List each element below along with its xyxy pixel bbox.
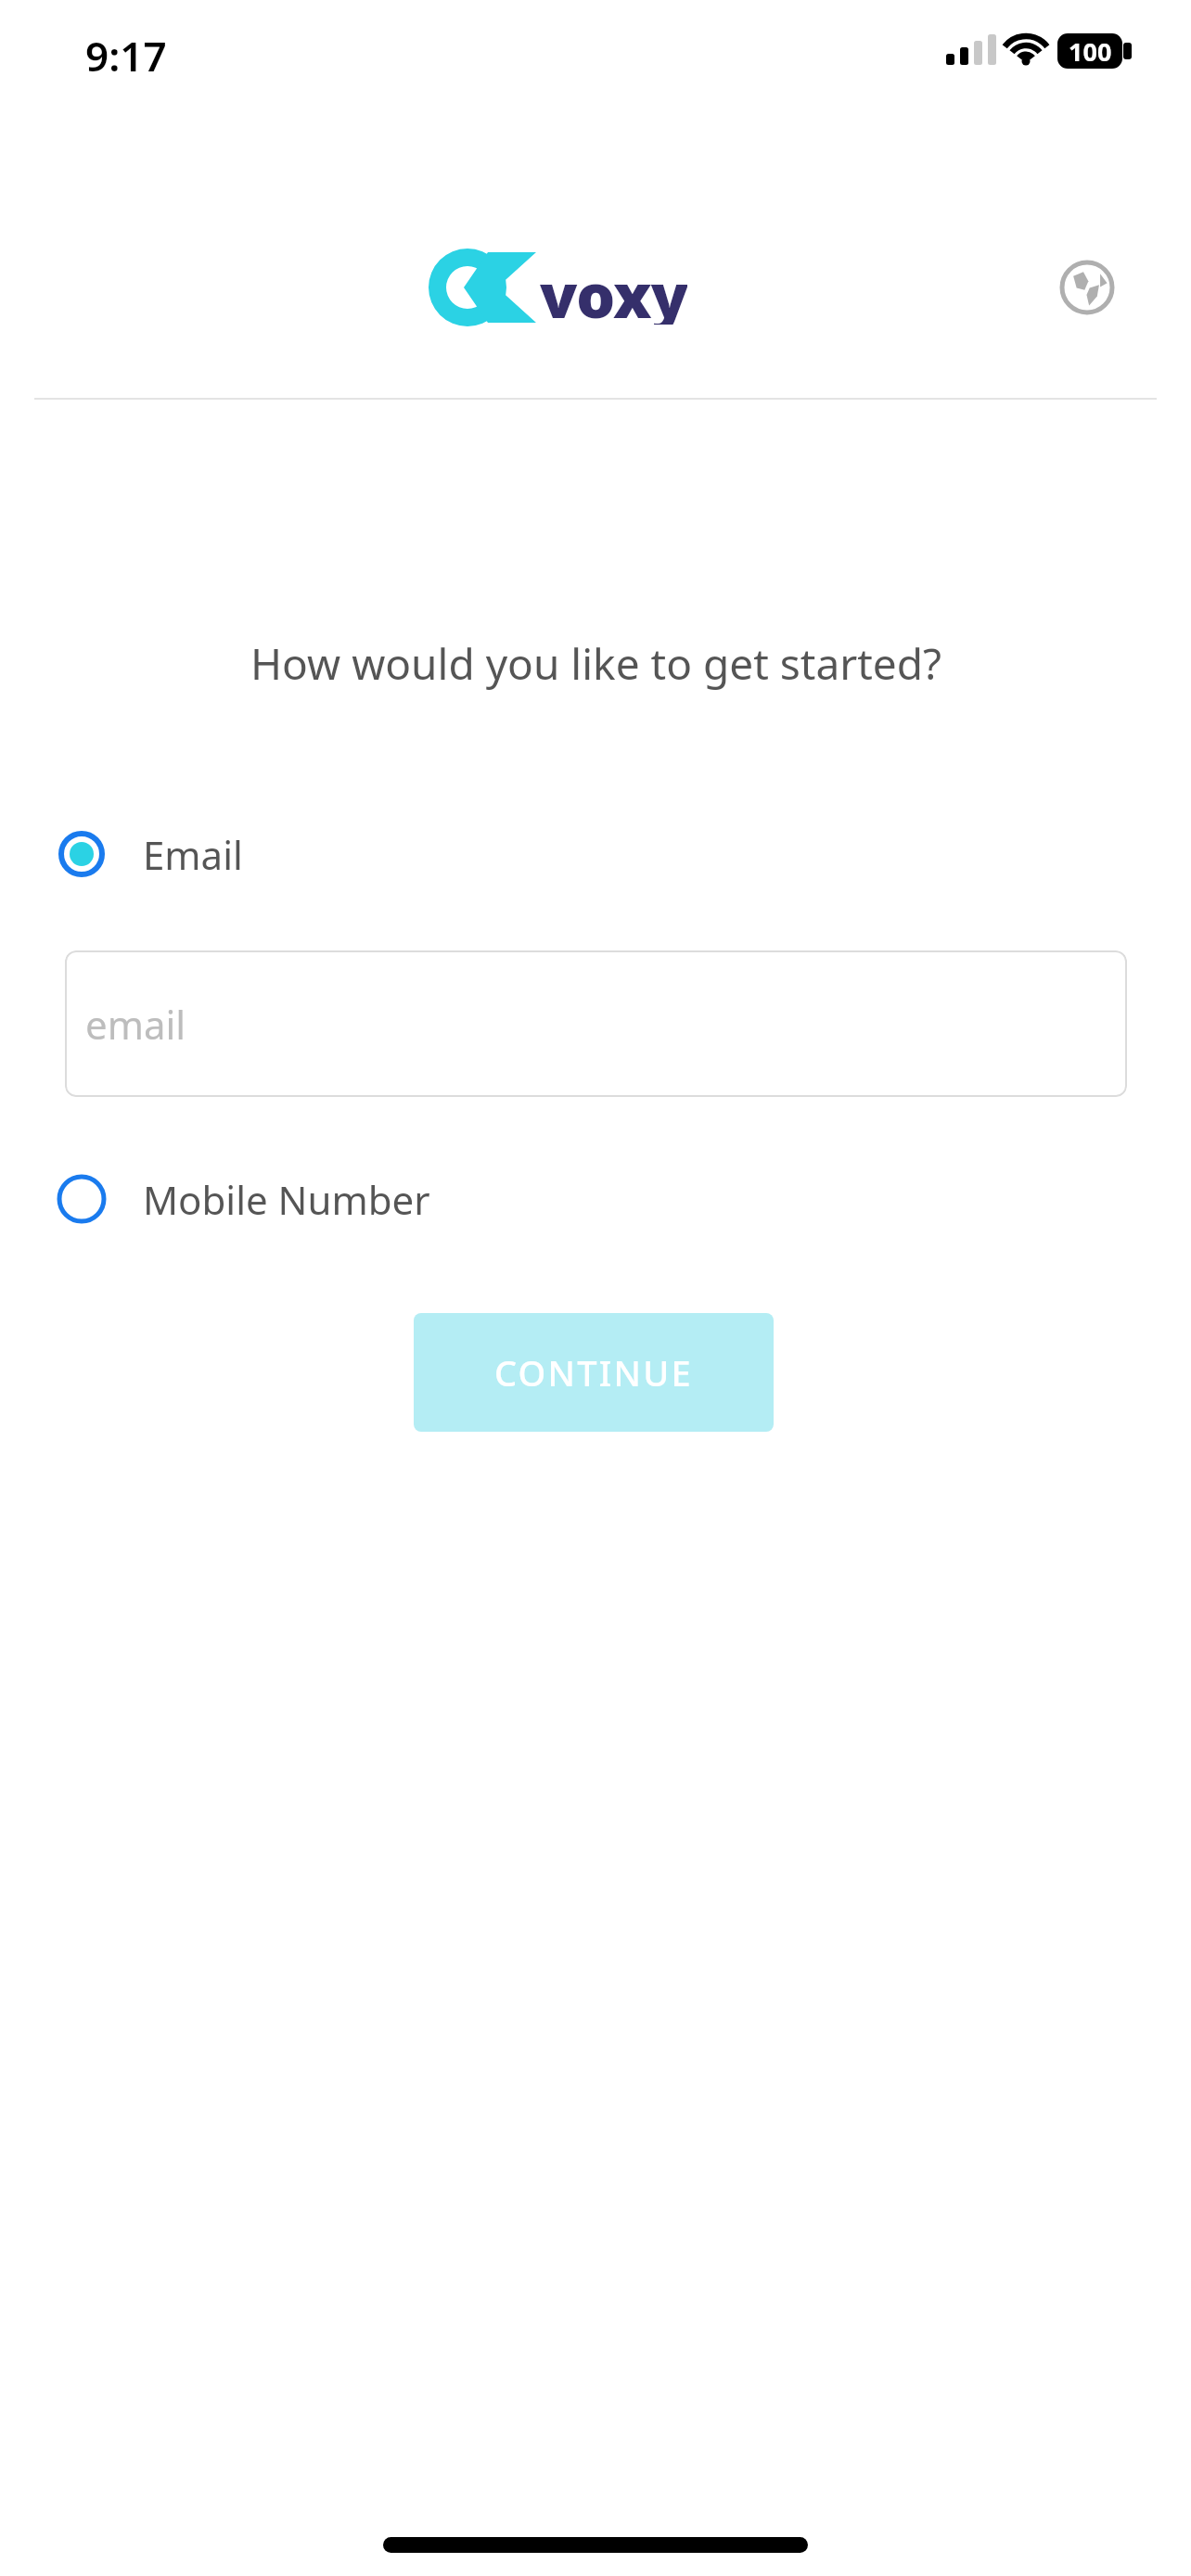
button[interactable]: Change language xyxy=(1050,250,1124,325)
staticText: 100 xyxy=(1069,34,1112,69)
button[interactable]: Mobile Number xyxy=(56,1161,501,1237)
staticText: CONTINUE xyxy=(494,1348,693,1396)
staticText: Email xyxy=(143,828,243,881)
staticText: 9:17 xyxy=(85,28,167,76)
staticText: Mobile Number xyxy=(143,1173,430,1226)
button[interactable]: Email xyxy=(56,816,427,892)
staticText: How would you like to get started? xyxy=(250,634,941,693)
staticText: voxy xyxy=(540,252,687,325)
button[interactable]: email xyxy=(65,950,1127,1097)
staticText: email xyxy=(85,998,186,1051)
button[interactable]: CONTINUE xyxy=(414,1313,774,1432)
